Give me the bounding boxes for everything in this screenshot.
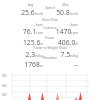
staticText: Avg bbox=[18, 3, 43, 7]
staticText: 800 bbox=[2, 74, 7, 78]
staticText: 2.3w/kg bbox=[0, 50, 43, 59]
staticText: --bpm bbox=[0, 22, 78, 27]
staticText: -- bbox=[0, 60, 78, 69]
staticText: Heart Rate bbox=[0, 18, 100, 22]
staticText: 400 bbox=[2, 93, 7, 97]
staticText: Power to Weight Ratio bbox=[0, 46, 100, 50]
staticText: 25.6km/h bbox=[0, 8, 43, 17]
staticText: --bpm bbox=[0, 22, 43, 27]
staticText: 1470rpm bbox=[0, 27, 78, 36]
staticText: Speed bbox=[0, 6, 100, 10]
staticText: Cadence bbox=[0, 26, 100, 30]
staticText: 7.5w/kg bbox=[0, 50, 78, 59]
staticText: Elevation bbox=[0, 56, 100, 60]
staticText: Power bbox=[0, 36, 100, 40]
staticText: 600 bbox=[2, 84, 7, 88]
staticText: 76.1rpm bbox=[0, 27, 43, 36]
staticText: 125.6w bbox=[0, 38, 43, 47]
staticText: 1768m bbox=[0, 60, 43, 69]
staticText: 406.0w bbox=[0, 38, 78, 47]
staticText: 50.8km/h bbox=[0, 8, 78, 17]
staticText: Max bbox=[53, 3, 78, 7]
